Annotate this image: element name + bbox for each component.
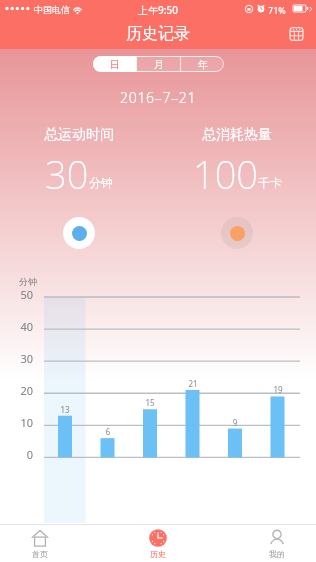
staticText: 15 bbox=[140, 397, 160, 408]
staticText: 20 bbox=[7, 383, 33, 398]
button[interactable]: 首页 bbox=[14, 525, 66, 562]
button[interactable]: 年 bbox=[181, 56, 224, 72]
button[interactable]: 月 bbox=[137, 56, 180, 72]
staticText: 2016–7–21 bbox=[120, 88, 197, 107]
staticText: 30 bbox=[45, 148, 89, 200]
staticText: 19 bbox=[268, 384, 288, 395]
staticText: 总消耗热量 bbox=[202, 126, 272, 144]
staticText: 历史记录 bbox=[126, 24, 190, 44]
staticText: 9 bbox=[225, 417, 245, 428]
staticText: 总运动时间 bbox=[44, 126, 114, 144]
staticText: 我的 bbox=[269, 549, 285, 559]
staticText: 30 bbox=[7, 351, 33, 366]
staticText: 分钟 bbox=[89, 175, 113, 190]
staticText: 历史 bbox=[150, 549, 166, 559]
button[interactable]: 我的 bbox=[251, 525, 303, 562]
staticText: 6 bbox=[98, 426, 118, 437]
staticText: 中国电信 bbox=[34, 4, 70, 15]
staticText: 分钟 bbox=[19, 276, 37, 287]
staticText: 10 bbox=[7, 415, 33, 430]
staticText: 50 bbox=[7, 287, 33, 302]
button[interactable]: Calendar bbox=[286, 23, 306, 43]
staticText: 0 bbox=[7, 447, 33, 462]
staticText: 年 bbox=[198, 58, 208, 71]
staticText: 日 bbox=[110, 58, 120, 71]
button[interactable]: 历史 bbox=[132, 525, 184, 562]
staticText: 首页 bbox=[32, 549, 48, 559]
staticText: 千卡 bbox=[258, 175, 282, 190]
staticText: 21 bbox=[183, 378, 203, 389]
staticText: 71% bbox=[268, 4, 286, 16]
staticText: 月 bbox=[154, 58, 164, 71]
staticText: 40 bbox=[7, 319, 33, 334]
button[interactable]: 日 bbox=[93, 56, 136, 72]
staticText: 13 bbox=[55, 404, 75, 415]
staticText: 上午9:50 bbox=[138, 3, 178, 17]
staticText: 100 bbox=[193, 148, 258, 200]
